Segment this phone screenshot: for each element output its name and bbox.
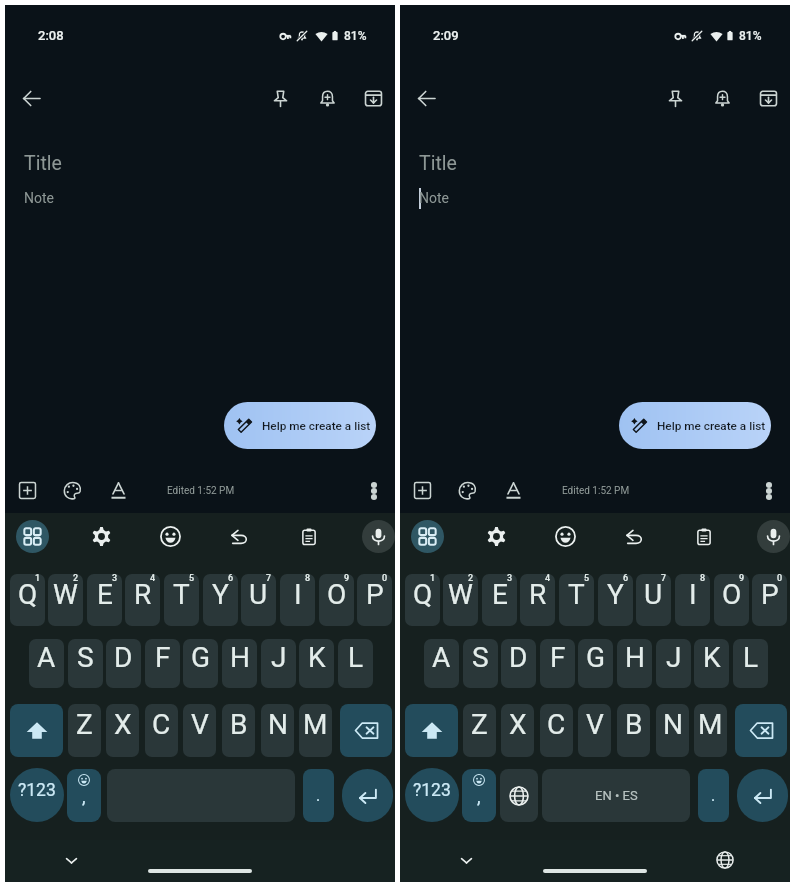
button[interactable]: X: [501, 704, 534, 757]
button[interactable]: More options: [356, 473, 392, 509]
button[interactable]: Format: [98, 470, 138, 510]
button[interactable]: Emoji and comma: [67, 769, 101, 822]
button[interactable]: C: [145, 704, 178, 757]
button[interactable]: R: [125, 574, 160, 626]
button[interactable]: T: [164, 574, 199, 626]
button[interactable]: G: [578, 639, 613, 688]
button[interactable]: C: [540, 704, 573, 757]
button[interactable]: L: [733, 639, 768, 688]
button[interactable]: O: [319, 574, 354, 626]
button[interactable]: J: [261, 639, 296, 688]
button[interactable]: Keyboard toolbar: [16, 520, 49, 553]
button[interactable]: N: [656, 704, 689, 757]
button[interactable]: Back: [11, 78, 51, 118]
button[interactable]: Settings: [85, 520, 118, 553]
button[interactable]: O: [714, 574, 749, 626]
button[interactable]: J: [656, 639, 691, 688]
button[interactable]: ?123: [10, 768, 64, 822]
button[interactable]: ?123: [405, 768, 459, 822]
button[interactable]: Help me create a list: [619, 402, 771, 449]
button[interactable]: S: [463, 639, 498, 688]
button[interactable]: Y: [203, 574, 238, 626]
button[interactable]: Backspace: [735, 704, 787, 757]
button[interactable]: .: [698, 769, 729, 822]
button[interactable]: Add: [402, 470, 442, 510]
button[interactable]: Pin: [655, 78, 695, 118]
button[interactable]: Reminder: [307, 78, 347, 118]
button[interactable]: Change language: [709, 844, 741, 876]
button[interactable]: K: [299, 639, 334, 688]
button[interactable]: Clipboard: [292, 520, 325, 553]
button[interactable]: Reminder: [702, 78, 742, 118]
button[interactable]: Clipboard: [687, 520, 720, 553]
button[interactable]: Help me create a list: [224, 402, 376, 449]
button[interactable]: U: [241, 574, 276, 626]
button[interactable]: Undo: [618, 520, 651, 553]
button[interactable]: Y: [598, 574, 633, 626]
button[interactable]: Settings: [480, 520, 513, 553]
button[interactable]: V: [183, 704, 216, 757]
button[interactable]: Shift: [10, 704, 63, 757]
button[interactable]: R: [520, 574, 555, 626]
button[interactable]: .: [303, 769, 334, 822]
button[interactable]: Keyboard toolbar: [411, 520, 444, 553]
button[interactable]: Z: [463, 704, 496, 757]
button[interactable]: Pin: [260, 78, 300, 118]
button[interactable]: F: [540, 639, 575, 688]
button[interactable]: B: [222, 704, 255, 757]
button[interactable]: M: [694, 704, 727, 757]
button[interactable]: Change language: [500, 769, 538, 822]
button[interactable]: Q: [405, 574, 440, 626]
button[interactable]: Hide keyboard: [450, 844, 482, 876]
button[interactable]: Z: [68, 704, 101, 757]
button[interactable]: W: [443, 574, 478, 626]
button[interactable]: Q: [10, 574, 45, 626]
button[interactable]: U: [636, 574, 671, 626]
button[interactable]: Shift: [405, 704, 458, 757]
button[interactable]: D: [106, 639, 141, 688]
button[interactable]: E: [482, 574, 517, 626]
button[interactable]: V: [578, 704, 611, 757]
button[interactable]: Emoji and comma: [462, 769, 496, 822]
button[interactable]: Hide keyboard: [55, 844, 87, 876]
button[interactable]: Archive: [353, 78, 393, 118]
button[interactable]: B: [617, 704, 650, 757]
button[interactable]: Voice input: [757, 520, 790, 553]
button[interactable]: Enter: [737, 769, 788, 822]
button[interactable]: Voice input: [362, 520, 395, 553]
button[interactable]: Backspace: [340, 704, 392, 757]
button[interactable]: H: [222, 639, 257, 688]
button[interactable]: Space: [542, 769, 690, 822]
button[interactable]: K: [694, 639, 729, 688]
button[interactable]: Emoji: [549, 520, 582, 553]
button[interactable]: X: [106, 704, 139, 757]
button[interactable]: H: [617, 639, 652, 688]
button[interactable]: F: [145, 639, 180, 688]
button[interactable]: L: [338, 639, 373, 688]
button[interactable]: W: [48, 574, 83, 626]
button[interactable]: A: [424, 639, 459, 688]
button[interactable]: Color: [52, 470, 92, 510]
button[interactable]: P: [752, 574, 787, 626]
button[interactable]: I: [675, 574, 710, 626]
button[interactable]: P: [357, 574, 392, 626]
button[interactable]: Add: [7, 470, 47, 510]
button[interactable]: Enter: [342, 769, 393, 822]
button[interactable]: I: [280, 574, 315, 626]
button[interactable]: D: [501, 639, 536, 688]
button[interactable]: Color: [447, 470, 487, 510]
button[interactable]: E: [87, 574, 122, 626]
button[interactable]: Undo: [223, 520, 256, 553]
button[interactable]: T: [559, 574, 594, 626]
button[interactable]: G: [183, 639, 218, 688]
button[interactable]: M: [299, 704, 332, 757]
button[interactable]: Emoji: [154, 520, 187, 553]
button[interactable]: A: [29, 639, 64, 688]
button[interactable]: More options: [751, 473, 787, 509]
button[interactable]: N: [261, 704, 294, 757]
button[interactable]: Back: [406, 78, 446, 118]
button[interactable]: S: [68, 639, 103, 688]
button[interactable]: Format: [493, 470, 533, 510]
button[interactable]: Archive: [748, 78, 788, 118]
